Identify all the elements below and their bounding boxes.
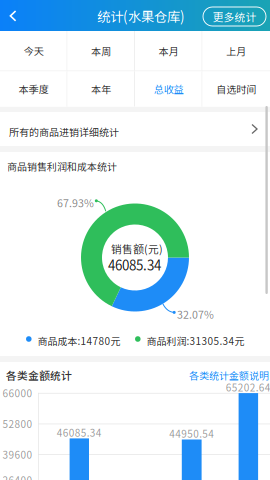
button[interactable]: Back	[2, 3, 24, 29]
staticText: 总收益	[154, 82, 184, 96]
button[interactable]: 自选时间	[202, 71, 270, 106]
button[interactable]: 本周	[67, 31, 135, 71]
staticText: 67.93%	[57, 195, 94, 210]
staticText: 26400	[2, 473, 32, 480]
staticText: 商品利润:31305.34元	[146, 333, 244, 348]
staticText: 46085.34	[108, 255, 161, 274]
button[interactable]: 各类统计金额说明	[189, 368, 269, 382]
staticText: 52800	[2, 416, 32, 431]
staticText: 自选时间	[216, 82, 256, 96]
button[interactable]: 上月	[202, 31, 270, 71]
staticText: 39600	[2, 447, 32, 462]
staticText: 本季度	[19, 82, 49, 96]
button[interactable]: 本年	[67, 71, 135, 106]
staticText: 商品销售利润和成本统计	[7, 159, 117, 173]
staticText: 44950.54	[169, 426, 214, 441]
staticText: 65202.64	[226, 380, 270, 394]
staticText: 商品成本:14780元	[37, 333, 120, 348]
button[interactable]: 更多统计	[203, 7, 266, 26]
staticText: 本月	[159, 44, 179, 58]
button[interactable]: 总收益	[135, 71, 202, 106]
staticText: 更多统计	[212, 9, 256, 24]
staticText: 统计(水果仓库)	[97, 6, 185, 26]
button[interactable]: 本季度	[0, 71, 67, 106]
button[interactable]: 所有的商品进销详细统计	[0, 112, 270, 146]
staticText: 46085.34	[57, 425, 102, 440]
staticText: 所有的商品进销详细统计	[9, 124, 119, 139]
staticText: 各类金额统计	[6, 367, 72, 383]
staticText: 66000	[2, 386, 32, 400]
staticText: 本年	[91, 82, 111, 96]
staticText: 今天	[24, 44, 44, 58]
staticText: 各类统计金额说明	[189, 368, 269, 382]
staticText: 上月	[226, 44, 246, 58]
staticText: 32.07%	[177, 306, 214, 322]
staticText: 本周	[91, 44, 111, 58]
button[interactable]: 本月	[135, 31, 202, 71]
button[interactable]: 今天	[0, 31, 67, 71]
staticText: 销售额(元)	[111, 241, 163, 256]
